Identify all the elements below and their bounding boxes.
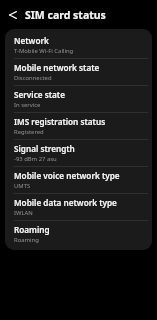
button[interactable]: Signal strength: [5, 140, 152, 166]
staticText: IMS registration status: [14, 116, 106, 127]
button[interactable]: Network: [5, 32, 152, 58]
staticText: SIM card status: [25, 8, 106, 22]
staticText: Disconnected: [14, 74, 52, 82]
staticText: Mobile network state: [14, 62, 100, 73]
staticText: Service state: [14, 89, 65, 100]
staticText: UMTS: [14, 182, 31, 190]
button[interactable]: Mobile voice network type: [5, 167, 152, 193]
staticText: IWLAN: [14, 209, 33, 217]
button[interactable]: Roaming: [5, 221, 152, 247]
staticText: In service: [14, 101, 41, 109]
button[interactable]: Mobile data network type: [5, 194, 152, 220]
staticText: Registered: [14, 128, 44, 136]
button[interactable]: Back: [4, 7, 20, 23]
staticText: T-Mobile Wi-Fi Calling: [14, 47, 74, 55]
staticText: Network: [14, 35, 49, 46]
button[interactable]: Service state: [5, 86, 152, 112]
button[interactable]: IMS registration status: [5, 113, 152, 139]
staticText: Mobile data network type: [14, 197, 117, 208]
staticText: Signal strength: [14, 143, 75, 154]
staticText: Roaming: [14, 224, 50, 235]
button[interactable]: Mobile network state: [5, 59, 152, 85]
staticText: Mobile voice network type: [14, 170, 120, 181]
staticText: Roaming: [14, 236, 39, 244]
staticText: -93 dBm 27 asu: [14, 155, 57, 163]
